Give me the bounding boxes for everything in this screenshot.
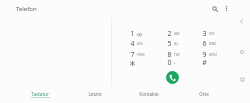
button[interactable]: 6 bbox=[201, 39, 235, 49]
staticText: JKL bbox=[174, 42, 179, 46]
staticText: Kontakte bbox=[139, 91, 159, 97]
button[interactable]: 2 bbox=[166, 29, 200, 39]
button[interactable]: Letzte bbox=[68, 91, 122, 103]
button[interactable]: 9 bbox=[201, 50, 235, 60]
staticText: Letzte bbox=[88, 91, 102, 97]
button[interactable]: 1 bbox=[129, 29, 163, 39]
button[interactable]: 5 bbox=[166, 39, 200, 49]
button[interactable]: Mehr Optionen bbox=[219, 1, 233, 15]
staticText: 3 bbox=[202, 29, 207, 39]
button[interactable]: Orte bbox=[177, 91, 231, 103]
staticText: Orte bbox=[199, 91, 209, 97]
button[interactable]: # bbox=[201, 58, 235, 68]
staticText: MNO bbox=[209, 42, 217, 46]
button[interactable]: 3 bbox=[201, 29, 235, 39]
button[interactable]: Suche bbox=[208, 2, 222, 16]
staticText: 0 bbox=[167, 58, 172, 68]
button[interactable]: Kontakte bbox=[122, 91, 176, 103]
staticText: Tastatur bbox=[31, 91, 49, 97]
staticText: 4 bbox=[130, 39, 135, 49]
button[interactable]: Zurück bbox=[234, 14, 248, 28]
button[interactable]: 4 bbox=[129, 39, 163, 49]
staticText: 8 bbox=[167, 50, 172, 60]
button[interactable]: Tastatur bbox=[13, 91, 67, 103]
staticText: WXYZ bbox=[209, 53, 217, 57]
staticText: + bbox=[174, 61, 176, 65]
button[interactable]: Übersicht bbox=[235, 72, 249, 86]
staticText: GHI bbox=[137, 42, 143, 46]
staticText: ABC bbox=[174, 32, 180, 36]
staticText: 9 bbox=[202, 50, 207, 60]
button[interactable]: Anrufen bbox=[166, 71, 179, 84]
staticText: Telefon bbox=[16, 5, 37, 13]
staticText: PQRS bbox=[137, 53, 145, 57]
staticText: TUV bbox=[174, 53, 180, 57]
button[interactable] bbox=[129, 58, 163, 68]
staticText: 7 bbox=[130, 50, 135, 60]
staticText: DEF bbox=[209, 32, 215, 36]
staticText: 1 bbox=[130, 29, 135, 39]
staticText: 6 bbox=[202, 39, 207, 49]
staticText: 5 bbox=[167, 39, 172, 49]
staticText: 2 bbox=[167, 29, 172, 39]
button[interactable]: 8 bbox=[166, 50, 200, 60]
staticText: # bbox=[202, 58, 207, 68]
button[interactable]: 0 bbox=[166, 58, 200, 68]
button[interactable]: 7 bbox=[129, 50, 163, 60]
button[interactable]: Startbildschirm bbox=[235, 45, 249, 59]
